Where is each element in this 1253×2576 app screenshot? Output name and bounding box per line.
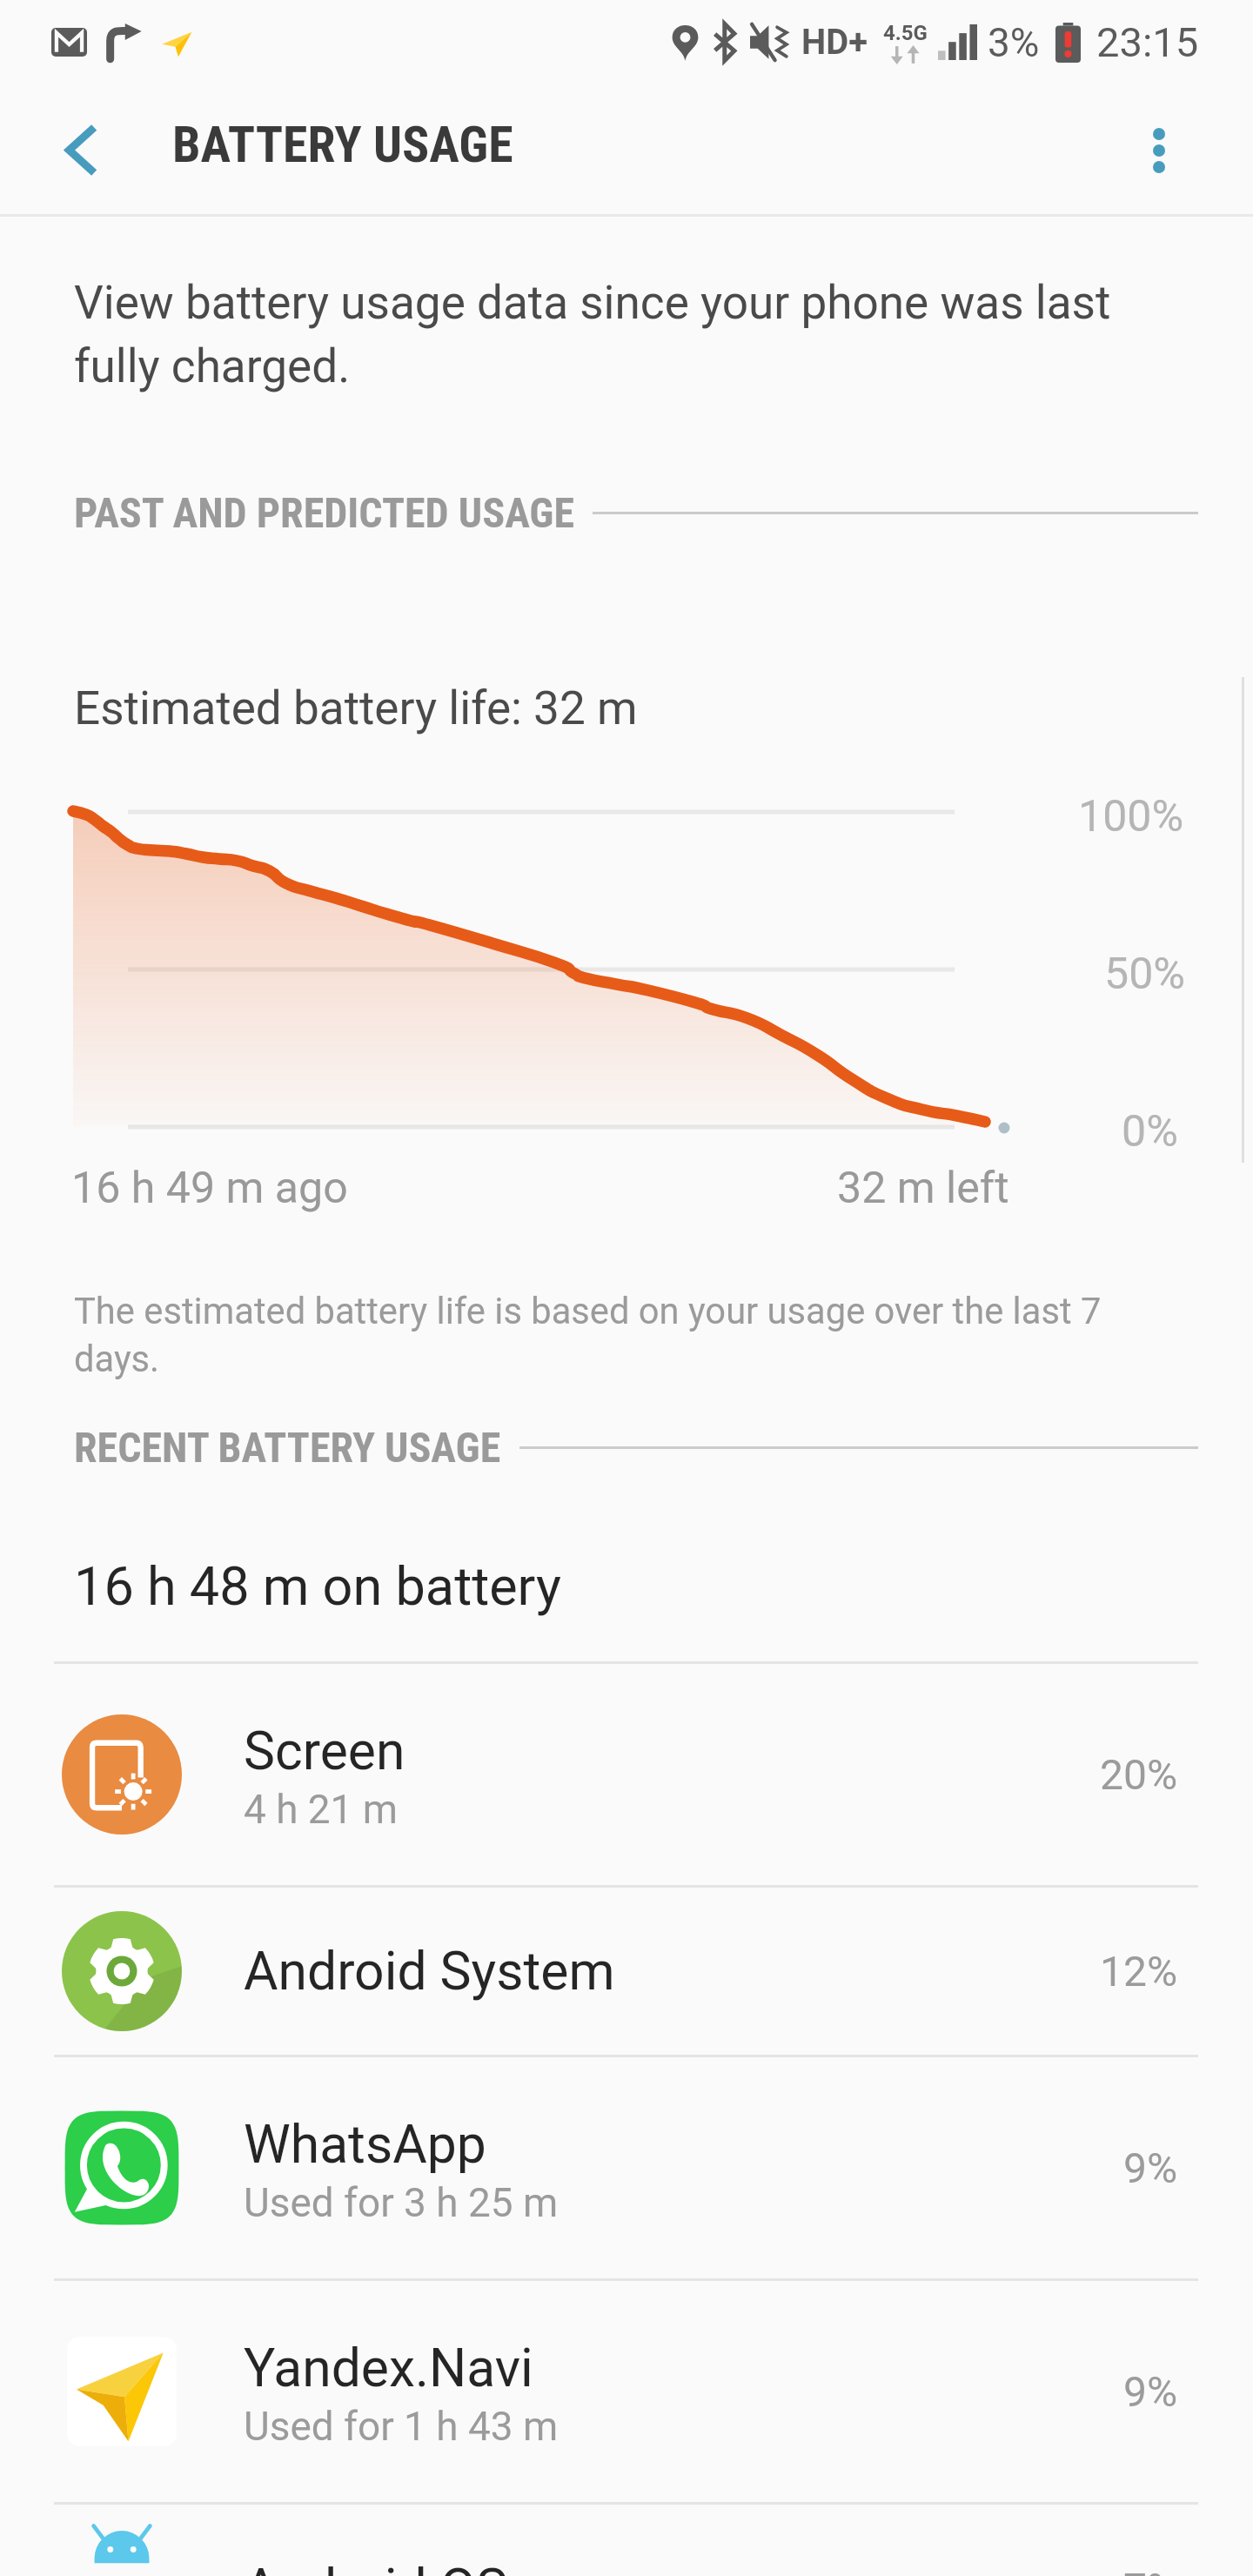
staticText: Used for 3 h 25 m xyxy=(244,2179,559,2226)
staticText: 3% xyxy=(988,19,1040,66)
button[interactable]: Android OS xyxy=(0,2505,1253,2576)
staticText: 16 h 49 m ago xyxy=(71,1163,348,1214)
staticText: The estimated battery life is based on y… xyxy=(74,1290,1102,1381)
staticText: 9% xyxy=(1123,2143,1178,2192)
staticText: Used for 1 h 43 m xyxy=(244,2403,559,2450)
button[interactable]: Yandex.Navi xyxy=(0,2281,1253,2502)
staticText: 20% xyxy=(1100,1750,1178,1799)
staticText: RECENT BATTERY USAGE xyxy=(74,1423,501,1472)
staticText: 7% xyxy=(1123,2564,1178,2576)
staticText: WhatsApp xyxy=(244,2114,486,2176)
staticText: 50% xyxy=(1104,949,1185,1000)
staticText: 16 h 48 m on battery xyxy=(74,1555,561,1618)
staticText: Screen xyxy=(244,1721,405,1782)
button[interactable]: Screen xyxy=(0,1664,1253,1885)
button[interactable]: More options xyxy=(1096,88,1222,213)
staticText: 4.5G xyxy=(883,21,928,45)
button[interactable]: Navigate up xyxy=(11,84,147,217)
staticText: View battery usage data since your phone… xyxy=(74,276,1111,393)
staticText: 100% xyxy=(1078,791,1184,842)
staticText: HD+ xyxy=(801,22,868,63)
staticText: Estimated battery life: 32 m xyxy=(74,681,638,735)
staticText: Yandex.Navi xyxy=(244,2338,533,2399)
staticText: 32 m left xyxy=(837,1163,1009,1214)
staticText: Android OS xyxy=(244,2558,508,2576)
staticText: 23:15 xyxy=(1096,18,1199,66)
button[interactable]: WhatsApp xyxy=(0,2057,1253,2278)
staticText: 4 h 21 m xyxy=(244,1786,399,1833)
staticText: 12% xyxy=(1100,1947,1178,1996)
staticText: PAST AND PREDICTED USAGE xyxy=(74,488,574,537)
staticText: 9% xyxy=(1123,2367,1178,2416)
staticText: Android System xyxy=(244,1941,615,2002)
staticText: 0% xyxy=(1122,1106,1178,1157)
staticText: BATTERY USAGE xyxy=(172,115,513,174)
button[interactable]: Android System xyxy=(0,1888,1253,2055)
